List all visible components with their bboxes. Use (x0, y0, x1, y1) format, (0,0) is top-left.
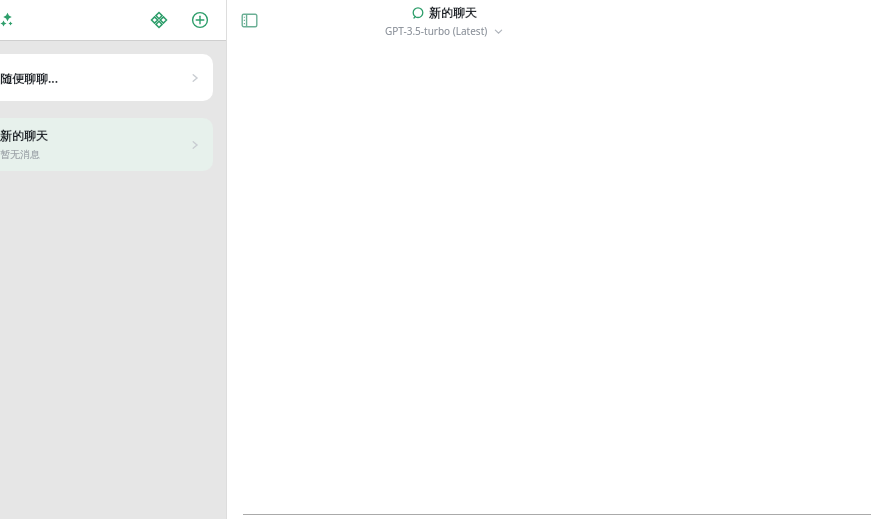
button[interactable]: 随便聊聊... (0, 54, 213, 101)
button[interactable]: Toggle sidebar (237, 8, 261, 32)
button[interactable]: Search (0, 6, 20, 34)
staticText: 随便聊聊... (0, 70, 59, 86)
button[interactable]: Discover (145, 6, 173, 34)
staticText: 新的聊天 (0, 128, 48, 143)
button[interactable]: New chat (186, 6, 214, 34)
staticText: 新的聊天 (429, 5, 477, 20)
button[interactable]: 新的聊天 (0, 118, 213, 171)
staticText: 暂无消息 (0, 148, 40, 161)
staticText: GPT-3.5-turbo (Latest) (385, 24, 488, 38)
button[interactable]: GPT-3.5-turbo (Latest) (385, 24, 503, 38)
